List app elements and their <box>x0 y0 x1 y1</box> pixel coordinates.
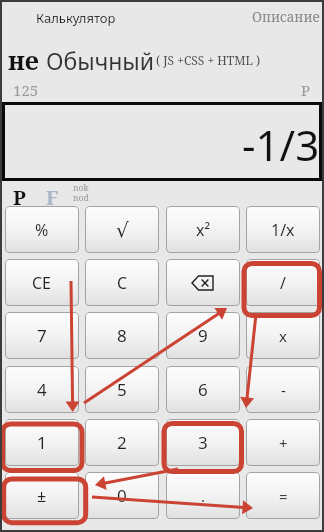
button[interactable]: 1 <box>5 419 79 466</box>
staticText: 1 <box>37 431 47 454</box>
button[interactable]: 5 <box>85 366 159 413</box>
staticText: Описание <box>252 8 320 26</box>
staticText: 8 <box>117 324 127 347</box>
staticText: P <box>13 184 26 208</box>
button[interactable]: 1/x <box>246 206 320 253</box>
button[interactable]: 0 <box>85 472 159 519</box>
staticText: 0 <box>117 484 127 507</box>
staticText: % <box>35 219 49 241</box>
staticText: nod <box>73 192 89 204</box>
button[interactable]: P <box>13 184 37 208</box>
staticText: ± <box>37 485 47 507</box>
staticText: x <box>279 326 287 346</box>
button[interactable]: 4 <box>5 366 79 413</box>
staticText: P <box>301 80 311 100</box>
button[interactable]: 8 <box>85 312 159 359</box>
button[interactable]: C <box>85 259 159 306</box>
staticText: 6 <box>198 378 208 401</box>
button[interactable]: + <box>246 419 320 466</box>
button[interactable]: / <box>246 259 320 306</box>
staticText: F <box>46 184 59 208</box>
button[interactable]: F <box>46 184 70 208</box>
button[interactable]: 3 <box>166 419 240 466</box>
staticText: 5 <box>117 378 127 401</box>
button[interactable] <box>166 259 240 306</box>
staticText: CE <box>32 272 52 294</box>
staticText: 2 <box>117 431 127 454</box>
button[interactable]: - <box>246 366 320 413</box>
button[interactable]: Описание <box>252 8 324 28</box>
staticText: не <box>8 43 39 77</box>
staticText: = <box>279 486 288 506</box>
staticText: C <box>117 272 128 294</box>
button[interactable]: 9 <box>166 312 240 359</box>
staticText: 7 <box>37 324 47 347</box>
button[interactable]: = <box>246 472 320 519</box>
staticText: x² <box>196 219 211 241</box>
staticText: . <box>201 486 206 506</box>
button[interactable]: x <box>246 312 320 359</box>
staticText: / <box>280 272 286 294</box>
staticText: 125 <box>13 80 39 100</box>
button[interactable]: . <box>166 472 240 519</box>
button[interactable]: CE <box>5 259 79 306</box>
staticText: -1/3 <box>242 116 320 173</box>
button[interactable]: 2 <box>85 419 159 466</box>
button[interactable]: √ <box>85 206 159 253</box>
button[interactable]: 6 <box>166 366 240 413</box>
staticText: √ <box>116 218 129 241</box>
staticText: 9 <box>198 324 208 347</box>
staticText: Калькулятор <box>36 9 116 27</box>
button[interactable]: 7 <box>5 312 79 359</box>
staticText: - <box>281 380 286 400</box>
staticText: nok <box>73 182 89 194</box>
button[interactable]: x² <box>166 206 240 253</box>
staticText: 1/x <box>271 219 295 241</box>
staticText: ( JS +CSS + HTML ) <box>156 52 261 68</box>
button[interactable]: ± <box>5 472 79 519</box>
staticText: + <box>279 433 288 453</box>
button[interactable]: % <box>5 206 79 253</box>
staticText: Обычный <box>46 45 155 76</box>
staticText: 3 <box>198 431 208 454</box>
staticText: 4 <box>37 378 47 401</box>
